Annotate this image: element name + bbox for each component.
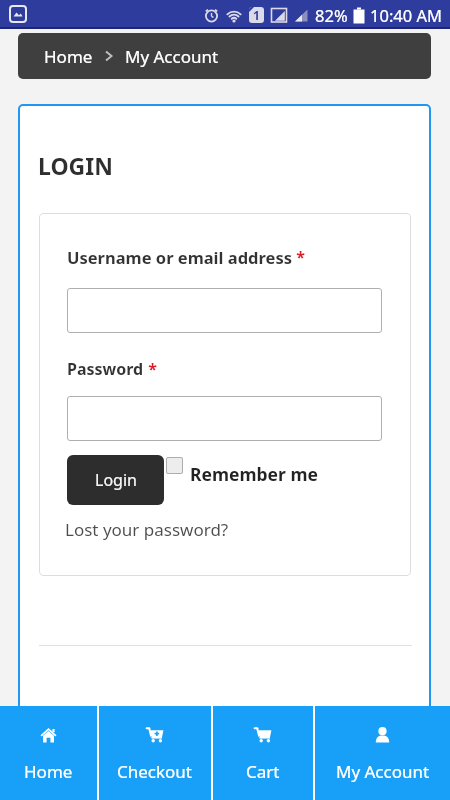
staticText: Checkout xyxy=(117,760,193,783)
staticText: * xyxy=(292,246,305,268)
staticText: Login xyxy=(95,469,137,491)
staticText: * xyxy=(144,358,157,380)
staticText: 82% xyxy=(315,4,348,26)
staticText: My Account xyxy=(125,45,219,68)
button[interactable]: Login xyxy=(67,455,164,505)
staticText: Cart xyxy=(246,760,280,783)
staticText: Username or email address xyxy=(67,246,292,268)
button[interactable]: Lost your password? xyxy=(65,518,229,541)
button[interactable] xyxy=(67,288,382,333)
staticText: Remember me xyxy=(190,462,318,486)
staticText: 10:40 AM xyxy=(370,4,442,26)
button[interactable]: Cart xyxy=(213,706,313,800)
staticText: LOGIN xyxy=(38,150,113,181)
staticText: Home xyxy=(44,45,93,68)
staticText: Home xyxy=(24,760,73,783)
button[interactable] xyxy=(67,396,382,441)
button[interactable]: Remember me xyxy=(166,457,318,481)
button[interactable]: Checkout xyxy=(99,706,211,800)
staticText: My Account xyxy=(336,760,430,783)
button[interactable]: My Account xyxy=(315,706,450,800)
staticText: 1 xyxy=(253,7,260,23)
button[interactable]: Home xyxy=(0,706,97,800)
staticText: Password xyxy=(67,358,144,380)
